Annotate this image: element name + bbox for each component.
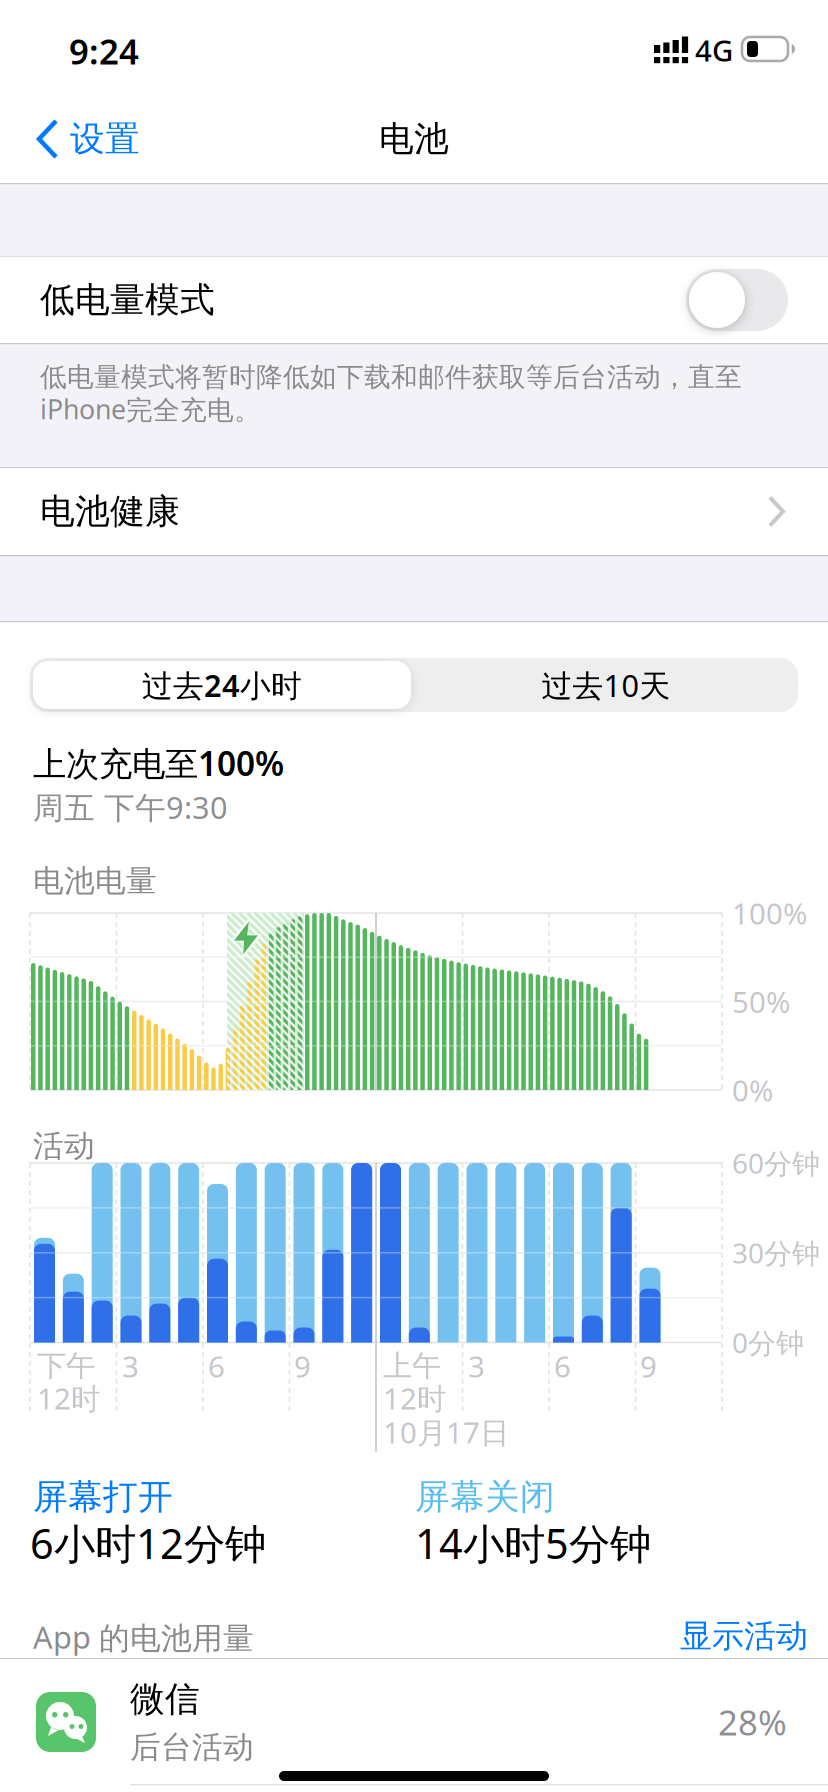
button[interactable]: 电池健康: [0, 468, 828, 555]
button[interactable]: 微信: [0, 1659, 828, 1784]
staticText: 电池: [379, 118, 449, 160]
staticText: 0分钟: [732, 1324, 804, 1361]
staticText: 过去24小时: [142, 665, 302, 705]
staticText: App 的电池用量: [33, 1617, 254, 1657]
staticText: 上午: [383, 1348, 441, 1384]
staticText: 50%: [732, 982, 790, 1021]
staticText: 14小时5分钟: [415, 1516, 651, 1570]
staticText: iPhone完全充电。: [40, 391, 261, 427]
button[interactable]: 过去24小时: [30, 658, 414, 712]
staticText: 过去10天: [541, 665, 670, 705]
staticText: 屏幕关闭: [415, 1476, 555, 1518]
staticText: 低电量模式: [40, 279, 215, 321]
staticText: 后台活动: [130, 1728, 254, 1766]
staticText: 3: [468, 1346, 485, 1385]
staticText: 电池健康: [40, 490, 180, 533]
staticText: 12时: [383, 1378, 446, 1417]
staticText: 设置: [70, 118, 140, 160]
staticText: 微信: [130, 1678, 200, 1720]
staticText: 屏幕打开: [33, 1476, 173, 1518]
staticText: 显示活动: [680, 1616, 808, 1656]
button[interactable]: 低电量模式: [686, 269, 788, 331]
staticText: 9: [640, 1346, 657, 1385]
staticText: 10月17日: [383, 1412, 509, 1451]
staticText: 上次充电至100%: [33, 741, 284, 785]
staticText: 28%: [718, 1699, 787, 1745]
staticText: 3: [122, 1346, 139, 1385]
staticText: 12时: [37, 1378, 100, 1417]
button[interactable]: 显示活动: [680, 1616, 808, 1656]
staticText: 6小时12分钟: [30, 1516, 266, 1570]
staticText: 6: [208, 1346, 225, 1385]
staticText: 活动: [33, 1127, 95, 1165]
staticText: 周五 下午9:30: [33, 787, 228, 827]
button[interactable]: 返回设置: [36, 109, 140, 169]
staticText: 9: [294, 1346, 311, 1385]
staticText: 低电量模式将暂时降低如下载和邮件获取等后台活动，直至: [40, 361, 742, 393]
staticText: 9:24: [69, 28, 139, 74]
button[interactable]: 过去10天: [414, 658, 798, 712]
staticText: 0%: [732, 1070, 773, 1109]
staticText: 下午: [37, 1348, 95, 1384]
staticText: 60分钟: [732, 1144, 820, 1182]
staticText: 6: [554, 1346, 571, 1385]
staticText: 30分钟: [732, 1234, 820, 1271]
staticText: 电池电量: [33, 862, 157, 900]
staticText: 100%: [732, 893, 807, 932]
staticText: 4G: [695, 30, 733, 69]
